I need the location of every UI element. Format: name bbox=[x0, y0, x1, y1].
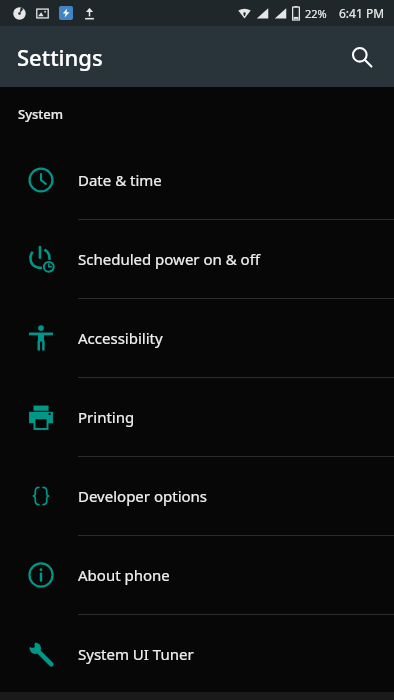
staticText: Accessibility bbox=[78, 328, 163, 348]
button[interactable]: Search bbox=[340, 35, 384, 79]
button[interactable]: About phone bbox=[0, 536, 394, 614]
button[interactable]: System UI Tuner bbox=[0, 615, 394, 692]
button[interactable]: Scheduled power on & off bbox=[0, 220, 394, 298]
staticText: About phone bbox=[78, 565, 170, 585]
staticText: System UI Tuner bbox=[78, 644, 194, 664]
staticText: 22% bbox=[305, 6, 327, 21]
staticText: Printing bbox=[78, 407, 135, 427]
button[interactable]: Developer options bbox=[0, 457, 394, 535]
staticText: 6:41 PM bbox=[339, 5, 385, 21]
button[interactable]: Date & time bbox=[0, 140, 394, 219]
staticText: Date & time bbox=[78, 170, 162, 190]
staticText: System bbox=[18, 105, 64, 123]
staticText: Settings bbox=[17, 42, 103, 72]
staticText: Scheduled power on & off bbox=[78, 249, 260, 269]
button[interactable]: Accessibility bbox=[0, 299, 394, 377]
button[interactable]: Printing bbox=[0, 378, 394, 456]
staticText: Developer options bbox=[78, 486, 208, 506]
